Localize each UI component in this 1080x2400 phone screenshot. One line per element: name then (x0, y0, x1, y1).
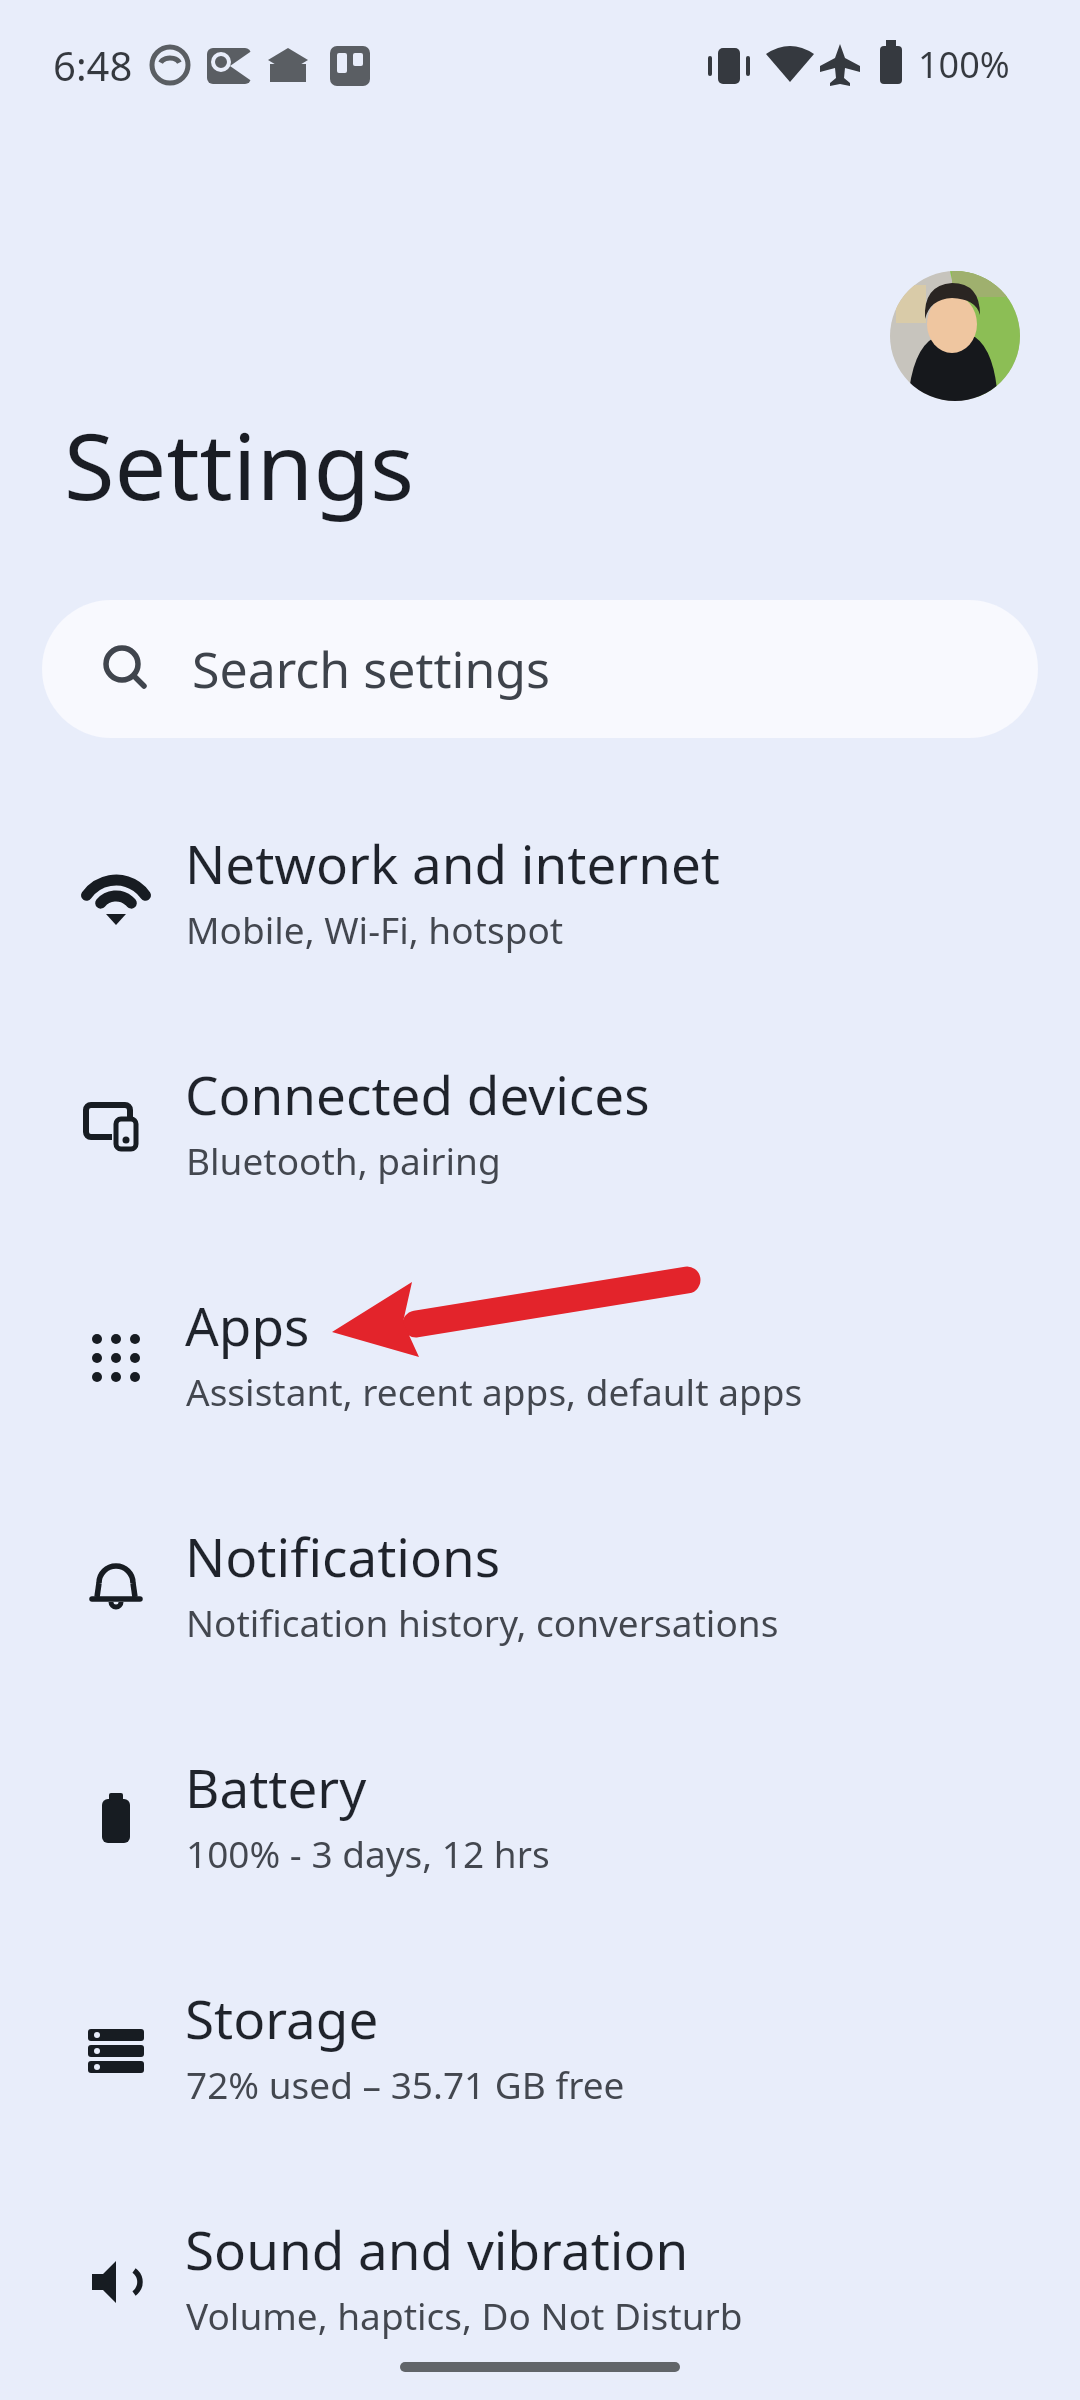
button[interactable]: Notifications (0, 1493, 1080, 1693)
staticText: 100% - 3 days, 12 hrs (186, 1828, 550, 1878)
button[interactable]: Network and internet (0, 800, 1080, 1000)
staticText: Sound and vibration (185, 2213, 689, 2285)
staticText: Search settings (192, 635, 550, 703)
staticText: Battery (185, 1751, 367, 1823)
staticText: Notification history, conversations (186, 1597, 779, 1647)
button[interactable]: Apps (0, 1262, 1080, 1462)
staticText: Mobile, Wi-Fi, hotspot (186, 904, 564, 954)
button[interactable] (890, 271, 1020, 401)
button[interactable]: Battery (0, 1724, 1080, 1924)
staticText: 72% used – 35.71 GB free (186, 2059, 625, 2109)
staticText: Assistant, recent apps, default apps (186, 1366, 803, 1416)
button[interactable]: Connected devices (0, 1031, 1080, 1231)
staticText: Settings (64, 402, 415, 527)
staticText: Bluetooth, pairing (186, 1135, 501, 1185)
staticText: 6:48 (53, 38, 133, 92)
staticText: Notifications (185, 1520, 501, 1592)
staticText: Volume, haptics, Do Not Disturb (186, 2290, 743, 2340)
button[interactable]: Storage (0, 1955, 1080, 2155)
staticText: Network and internet (185, 827, 720, 899)
staticText: 100% (918, 40, 1010, 89)
staticText: Connected devices (185, 1058, 650, 1130)
button[interactable]: Sound and vibration (0, 2186, 1080, 2386)
button[interactable]: Search settings (42, 600, 1038, 738)
staticText: Storage (185, 1982, 379, 2054)
staticText: Apps (185, 1289, 310, 1361)
